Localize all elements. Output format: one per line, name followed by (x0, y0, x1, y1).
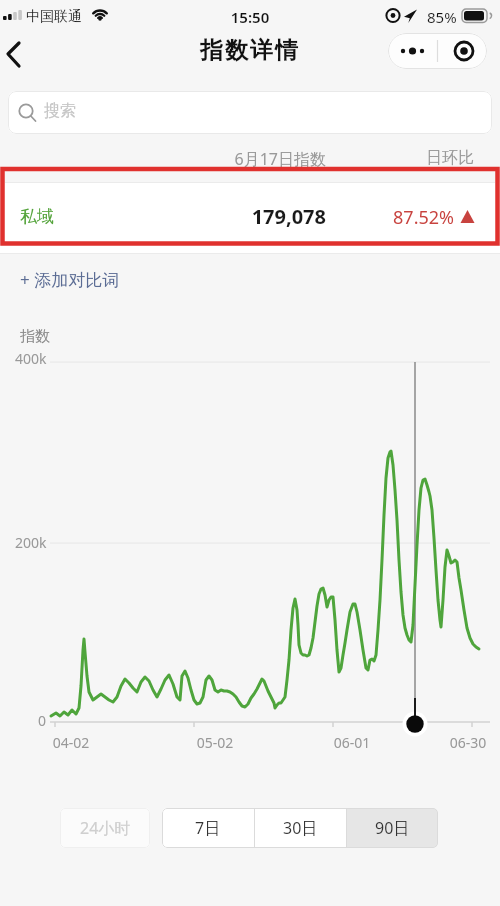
staticText: 24小时 (80, 817, 131, 839)
staticText: 06-30 (438, 733, 498, 752)
staticText: 04-02 (41, 733, 101, 752)
staticText: 90日 (375, 817, 410, 839)
staticText: 06-01 (322, 733, 382, 752)
staticText: + 添加对比词 (20, 268, 120, 291)
staticText: 日环比 (374, 148, 474, 168)
staticText: 0 (38, 711, 47, 730)
staticText: 85% (427, 7, 457, 27)
staticText: 指数 (20, 327, 50, 346)
staticText: 05-02 (185, 733, 245, 752)
staticText: 30日 (283, 817, 318, 839)
button[interactable]: 24小时 (60, 808, 150, 848)
button[interactable] (388, 33, 487, 69)
staticText: 私域 (20, 206, 54, 227)
button[interactable]: 私域 (0, 182, 500, 254)
button[interactable] (0, 36, 44, 76)
button[interactable]: 搜索 (8, 91, 492, 134)
staticText: 7日 (195, 817, 221, 839)
staticText: 179,078 (146, 203, 326, 230)
button[interactable]: 7日 (162, 808, 254, 848)
button[interactable]: 30日 (255, 808, 346, 848)
staticText: 200k (15, 533, 47, 552)
staticText: 15:50 (226, 7, 274, 27)
button[interactable]: + 添加对比词 (14, 264, 174, 298)
staticText: 6月17日指数 (146, 148, 326, 170)
button[interactable]: 90日 (347, 808, 438, 848)
staticText: 400k (15, 349, 47, 368)
staticText: 搜索 (44, 101, 76, 121)
staticText: 指数详情 (175, 36, 325, 65)
staticText: 中国联通 (26, 8, 82, 26)
staticText: 87.52% (304, 205, 454, 230)
